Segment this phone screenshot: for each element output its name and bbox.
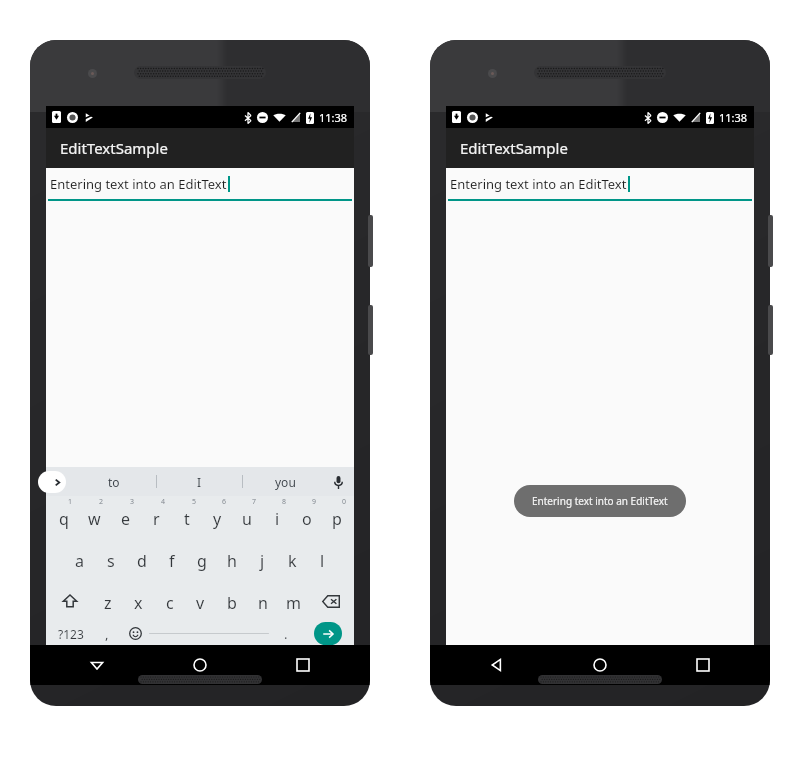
staticText: you <box>275 474 296 490</box>
button[interactable]: b <box>216 580 247 622</box>
staticText: d <box>137 550 147 572</box>
staticText: i <box>275 508 280 530</box>
staticText: p <box>332 508 342 530</box>
staticText: 11:38 <box>719 110 748 125</box>
button[interactable]: 4 <box>141 496 172 538</box>
button[interactable]: Enter <box>314 622 342 645</box>
staticText: 1 <box>68 497 73 507</box>
staticText: l <box>320 550 325 572</box>
staticText: w <box>88 508 101 530</box>
button[interactable]: Entering text into an EditText <box>514 485 686 517</box>
button[interactable]: z <box>92 580 123 622</box>
button[interactable]: 9 <box>292 496 322 538</box>
button[interactable]: j <box>247 538 277 580</box>
button[interactable]: . <box>269 622 303 645</box>
button[interactable]: f <box>157 538 187 580</box>
button[interactable]: 3 <box>110 496 141 538</box>
button[interactable]: a <box>64 538 95 580</box>
button[interactable]: 2 <box>79 496 110 538</box>
staticText: z <box>104 592 112 614</box>
staticText: c <box>166 592 174 614</box>
staticText: Entering text into an EditText <box>450 175 627 193</box>
staticText: t <box>184 508 190 530</box>
staticText: to <box>108 474 120 490</box>
staticText: g <box>197 550 207 572</box>
staticText: 2 <box>99 497 104 507</box>
button[interactable]: 6 <box>202 496 232 538</box>
staticText: b <box>227 592 237 614</box>
button[interactable]: k <box>277 538 307 580</box>
button[interactable]: h <box>217 538 247 580</box>
staticText: q <box>59 508 69 530</box>
staticText: u <box>242 508 252 530</box>
button[interactable]: Hide keyboard <box>46 645 148 685</box>
button[interactable]: s <box>95 538 126 580</box>
button[interactable]: g <box>187 538 217 580</box>
button[interactable]: I <box>157 467 242 496</box>
staticText: o <box>302 508 312 530</box>
button[interactable]: m <box>278 580 309 622</box>
staticText: v <box>196 592 205 614</box>
button[interactable]: Home <box>548 645 651 685</box>
staticText: Entering text into an EditText <box>50 175 227 193</box>
staticText: 3 <box>130 497 135 507</box>
button[interactable]: n <box>247 580 278 622</box>
button[interactable]: x <box>123 580 154 622</box>
staticText: k <box>288 550 297 572</box>
button[interactable]: Recents <box>251 645 354 685</box>
staticText: , <box>105 625 109 643</box>
staticText: 0 <box>342 497 347 507</box>
staticText: x <box>134 592 143 614</box>
staticText: m <box>286 592 301 614</box>
button[interactable]: Backspace <box>309 580 352 622</box>
staticText: ?123 <box>58 626 84 642</box>
staticText: y <box>213 508 222 530</box>
staticText: 6 <box>222 497 227 507</box>
staticText: r <box>153 508 160 530</box>
staticText: 9 <box>312 497 317 507</box>
staticText: s <box>107 550 115 572</box>
staticText: n <box>258 592 268 614</box>
button[interactable]: Voice input <box>328 472 348 492</box>
staticText: e <box>121 508 131 530</box>
button[interactable]: Back <box>446 645 548 685</box>
button[interactable]: 0 <box>322 496 352 538</box>
staticText: 4 <box>161 497 166 507</box>
button[interactable]: Recents <box>651 645 754 685</box>
button[interactable]: Shift <box>48 580 92 622</box>
staticText: I <box>197 474 202 490</box>
button[interactable]: Home <box>148 645 251 685</box>
staticText: j <box>260 550 265 572</box>
staticText: EditTextSample <box>60 138 168 158</box>
button[interactable]: to <box>72 467 156 496</box>
staticText: 7 <box>252 497 257 507</box>
button[interactable]: l <box>307 538 337 580</box>
staticText: EditTextSample <box>460 138 568 158</box>
button[interactable]: 1 <box>48 496 79 538</box>
button[interactable]: v <box>185 580 216 622</box>
button[interactable]: ?123 <box>48 622 93 645</box>
button[interactable]: 7 <box>232 496 262 538</box>
button[interactable]: , <box>93 622 121 645</box>
button[interactable]: you <box>243 467 328 496</box>
button[interactable]: More suggestions <box>38 471 66 493</box>
staticText: 5 <box>192 497 197 507</box>
button[interactable]: d <box>126 538 157 580</box>
staticText: Entering text into an EditText <box>532 494 668 508</box>
staticText: f <box>169 550 175 572</box>
button[interactable]: c <box>154 580 185 622</box>
staticText: 11:38 <box>319 110 348 125</box>
staticText: . <box>284 625 288 643</box>
staticText: h <box>227 550 237 572</box>
staticText: a <box>75 550 84 572</box>
button[interactable]: 5 <box>172 496 202 538</box>
staticText: 8 <box>282 497 287 507</box>
button[interactable]: 8 <box>262 496 292 538</box>
button[interactable]: Emoji <box>121 622 149 645</box>
